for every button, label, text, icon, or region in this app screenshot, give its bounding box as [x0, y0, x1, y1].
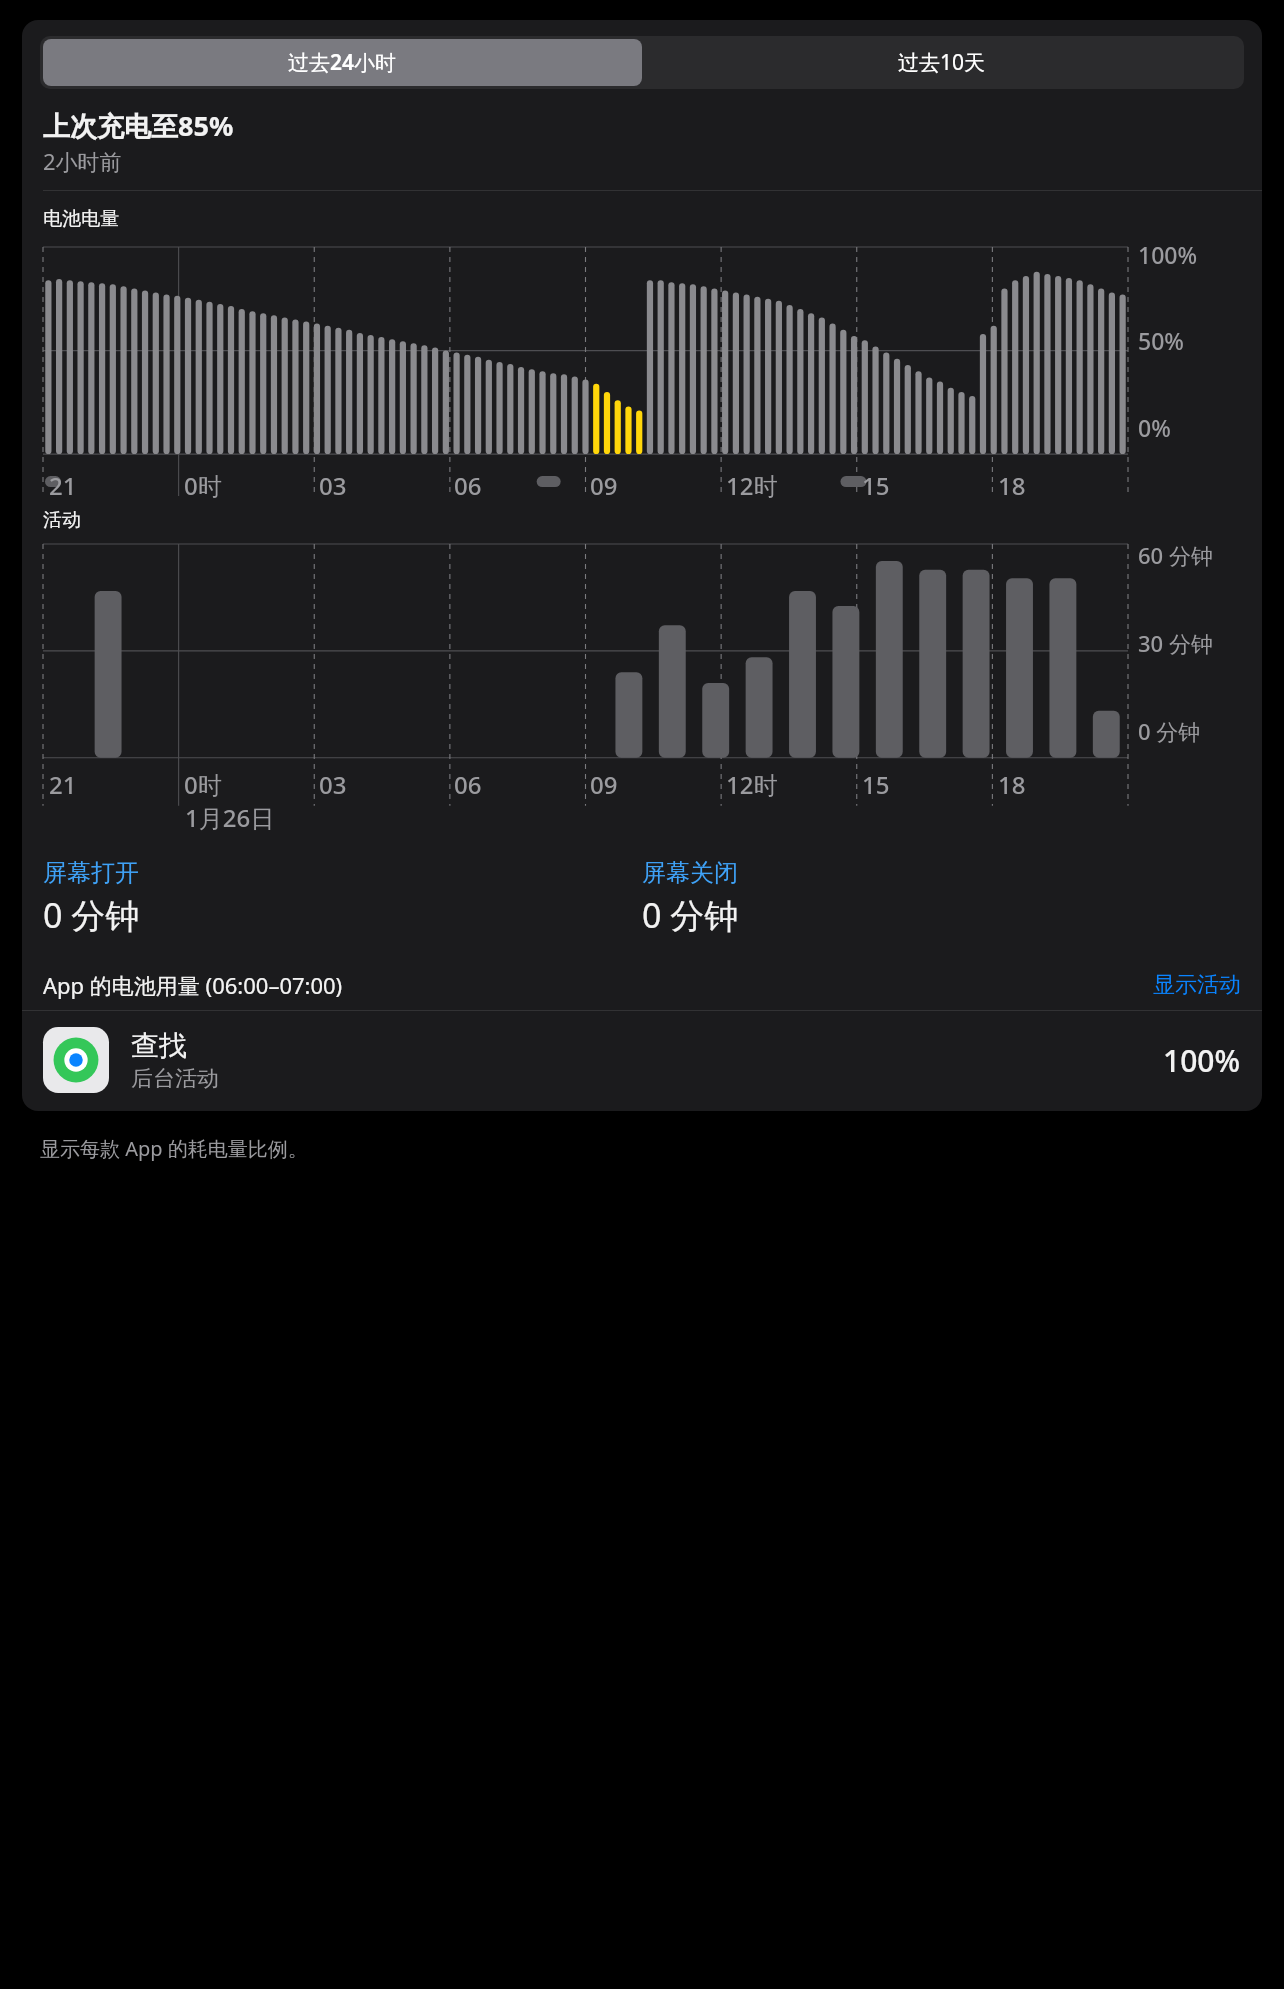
other: 查找 App 图标: [43, 1027, 109, 1093]
staticText: 过去10天: [898, 48, 986, 77]
staticText: 21: [49, 768, 77, 801]
staticText: 显示每款 App 的耗电量比例。: [40, 1135, 308, 1162]
staticText: 100%: [1138, 239, 1198, 270]
staticText: 0时: [184, 768, 222, 801]
staticText: 屏幕关闭: [642, 858, 738, 888]
staticText: 15: [862, 768, 890, 801]
staticText: 50%: [1138, 325, 1184, 356]
staticText: 06: [454, 469, 482, 502]
staticText: 2小时前: [43, 146, 122, 176]
staticText: 100%: [1163, 1040, 1241, 1081]
staticText: 屏幕打开: [43, 858, 139, 888]
staticText: 0 分钟: [642, 892, 739, 938]
staticText: 12时: [726, 469, 778, 502]
button[interactable]: 查找 App 图标: [22, 1011, 1262, 1111]
staticText: 09: [590, 469, 618, 502]
staticText: 18: [998, 768, 1026, 801]
staticText: 显示活动: [1153, 971, 1241, 999]
staticText: 电池电量: [43, 207, 119, 231]
staticText: 后台活动: [131, 1065, 219, 1093]
staticText: 60 分钟: [1138, 540, 1213, 570]
staticText: 21: [49, 469, 77, 502]
staticText: 1月26日: [185, 801, 275, 834]
staticText: 09: [590, 768, 618, 801]
staticText: 0 分钟: [43, 892, 140, 938]
staticText: 活动: [43, 508, 81, 532]
staticText: 查找: [131, 1028, 187, 1063]
staticText: 30 分钟: [1138, 628, 1213, 658]
staticText: 18: [998, 469, 1026, 502]
staticText: 0时: [184, 469, 222, 502]
staticText: 15: [862, 469, 890, 502]
button[interactable]: 过去10天: [642, 39, 1241, 86]
staticText: App 的电池用量 (06:00–07:00): [43, 970, 343, 1000]
staticText: 上次充电至85%: [43, 107, 234, 144]
staticText: 12时: [726, 768, 778, 801]
staticText: 过去24小时: [288, 48, 397, 77]
staticText: 03: [319, 469, 347, 502]
staticText: 03: [319, 768, 347, 801]
staticText: 0 分钟: [1138, 716, 1201, 746]
button[interactable]: 显示活动: [1153, 971, 1241, 999]
staticText: 0%: [1138, 412, 1171, 443]
button[interactable]: 过去24小时: [43, 39, 642, 86]
staticText: 06: [454, 768, 482, 801]
